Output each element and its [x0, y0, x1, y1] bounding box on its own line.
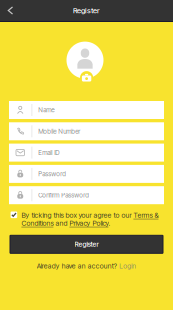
staticText: Conditions and Privacy Policy. [21, 219, 110, 227]
staticText: Email ID [38, 149, 59, 156]
button[interactable]: Change profile photo [68, 42, 105, 79]
button[interactable]: Login [119, 262, 136, 270]
button[interactable]: Back [0, 0, 21, 21]
button[interactable]: Email ID [9, 144, 164, 162]
button[interactable]: Name [9, 101, 164, 119]
staticText: By ticking this box your agree to our Te… [21, 211, 158, 219]
staticText: Confirm Password [38, 191, 89, 199]
staticText: Register [74, 240, 98, 248]
staticText: Mobile Number [38, 127, 80, 135]
staticText: Password [38, 170, 66, 178]
button[interactable]: Accept terms and conditions [11, 211, 17, 218]
button[interactable]: Register [10, 235, 163, 253]
button[interactable]: Password [9, 165, 164, 183]
staticText: Register [73, 6, 100, 15]
staticText: Login [119, 262, 136, 270]
staticText: Already have an account? [37, 262, 117, 270]
staticText: Name [38, 106, 54, 114]
button[interactable]: Confirm Password [9, 186, 164, 204]
button[interactable]: Mobile Number [9, 122, 164, 140]
